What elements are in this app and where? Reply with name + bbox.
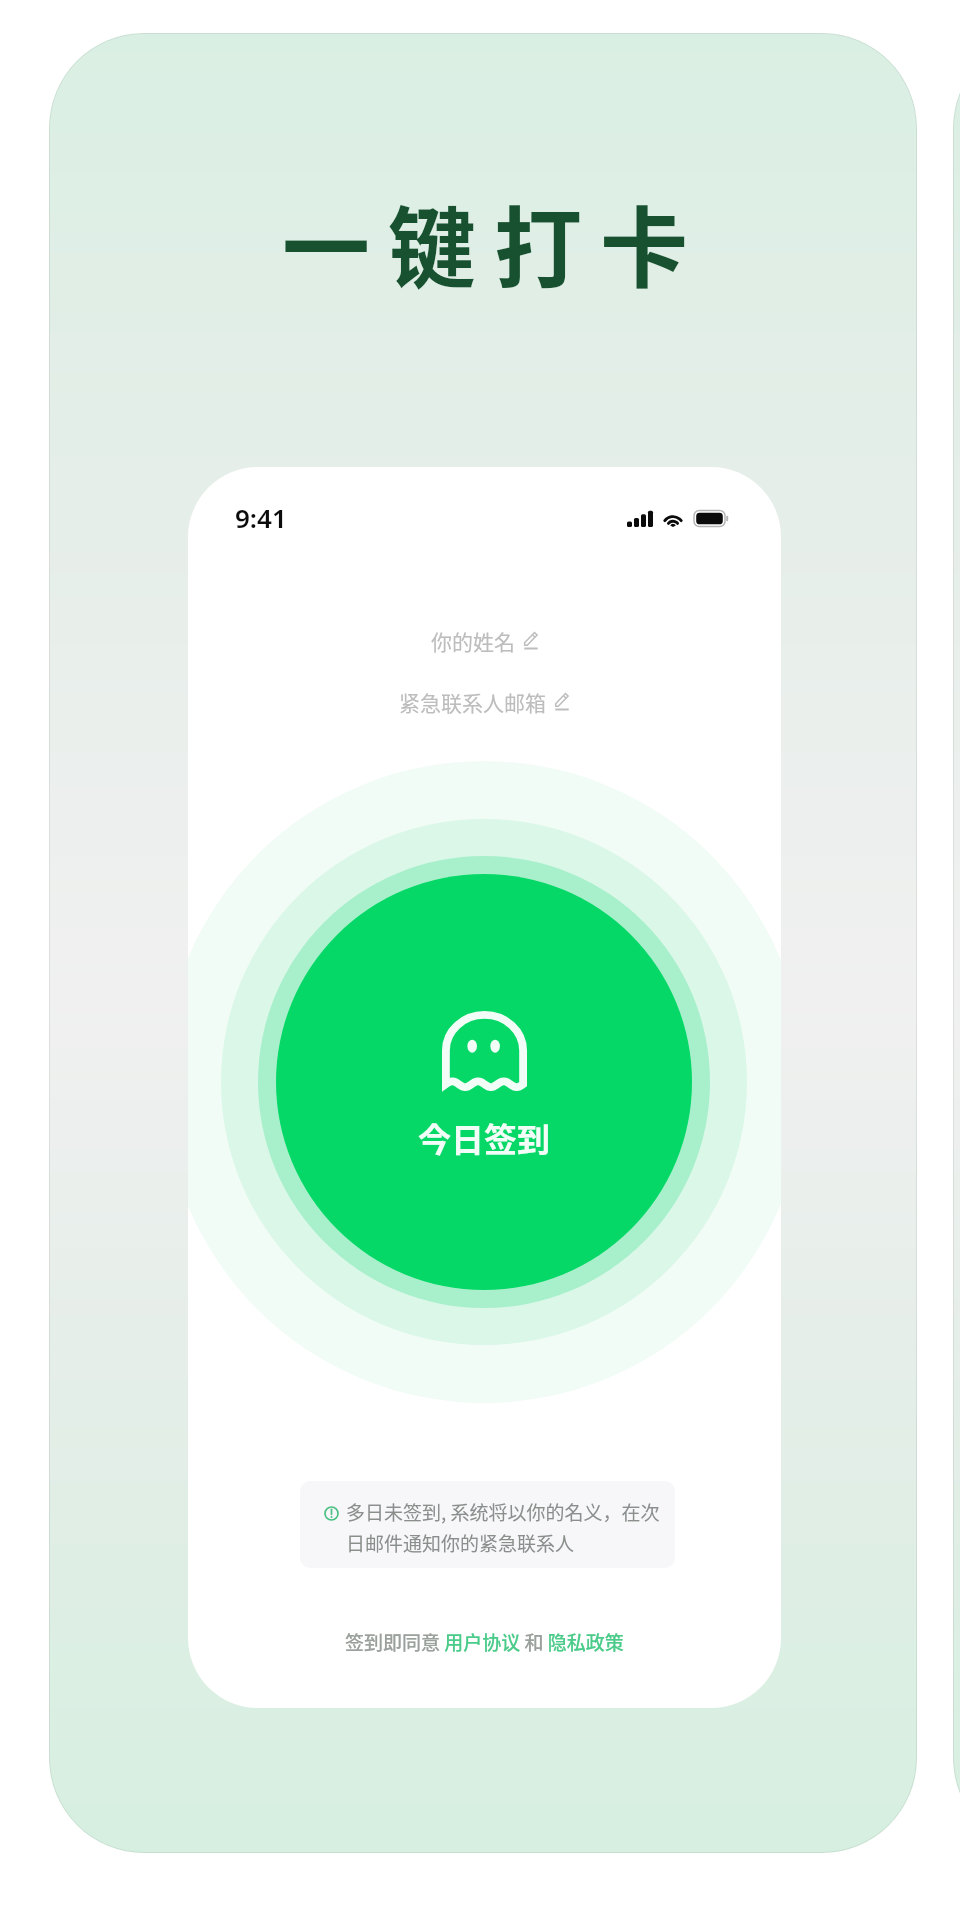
button[interactable]: 紧急联系人邮箱 xyxy=(399,687,570,717)
button[interactable]: 签到即同意 用户协议 和 隐私政策 xyxy=(345,1628,624,1656)
other: Edit xyxy=(554,694,570,711)
staticText: 9:41 xyxy=(235,500,287,535)
staticText: 紧急联系人邮箱 xyxy=(399,687,546,717)
staticText: 今日签到 xyxy=(418,1114,550,1162)
other: Ghost xyxy=(442,1011,527,1091)
staticText: 多日未签到, 系统将以你的名义，在次 日邮件通知你的紧急联系人 xyxy=(346,1498,675,1556)
button[interactable]: 你的姓名 xyxy=(431,626,539,656)
button[interactable]: Ghost xyxy=(276,874,692,1290)
staticText: 一键打卡 xyxy=(60,178,917,305)
staticText: 你的姓名 xyxy=(431,626,515,656)
other: Edit xyxy=(523,633,539,650)
